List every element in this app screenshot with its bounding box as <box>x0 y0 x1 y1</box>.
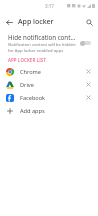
staticText: 3:17 <box>45 3 54 9</box>
staticText: App locker <box>18 17 54 27</box>
button[interactable]: Facebook <box>0 91 98 104</box>
button[interactable]: Search <box>83 16 95 28</box>
button[interactable]: Back <box>3 16 15 28</box>
button[interactable]: Remove Facebook <box>84 93 93 102</box>
button[interactable]: Chrome <box>0 65 98 78</box>
button[interactable]: Remove Chrome <box>84 67 93 76</box>
button[interactable]: Hide notification content toggle <box>80 38 92 48</box>
button[interactable]: Add apps <box>0 104 98 117</box>
staticText: Chrome <box>20 68 84 76</box>
staticText: Facebook <box>20 94 84 102</box>
staticText: Hide notification content <box>8 33 76 41</box>
staticText: Add apps <box>20 107 45 115</box>
staticText: Notification content will be hidden for … <box>8 42 76 53</box>
button[interactable]: Remove Drive <box>84 80 93 89</box>
staticText: Drive <box>20 81 84 89</box>
button[interactable]: Drive <box>0 78 98 91</box>
button[interactable]: Hide notification content <box>0 32 98 54</box>
staticText: APP LOCKER LIST <box>8 57 47 63</box>
